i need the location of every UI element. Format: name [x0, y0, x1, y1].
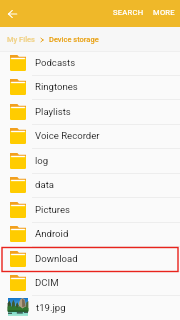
- button[interactable]: Playlists: [0, 100, 180, 125]
- button[interactable]: Pictures: [0, 198, 180, 223]
- button[interactable]: MORE: [149, 4, 180, 23]
- staticText: data: [35, 179, 54, 190]
- button[interactable]: Ringtones: [0, 75, 180, 100]
- button[interactable]: Device storage: [48, 32, 100, 47]
- staticText: Download: [35, 253, 78, 264]
- button[interactable]: Navigate up: [0, 1, 26, 27]
- button[interactable]: DCIM: [0, 271, 180, 296]
- button[interactable]: My Files: [6, 32, 36, 47]
- button[interactable]: Podcasts: [0, 51, 180, 76]
- staticText: Voice Recorder: [35, 130, 100, 141]
- staticText: log: [35, 155, 49, 166]
- button[interactable]: Voice Recorder: [0, 124, 180, 149]
- button[interactable]: t19.jpg: [0, 296, 180, 320]
- button[interactable]: Download: [0, 247, 180, 272]
- button[interactable]: data: [0, 173, 180, 198]
- staticText: Android: [35, 228, 69, 239]
- staticText: My Files: [7, 35, 35, 44]
- button[interactable]: log: [0, 149, 180, 174]
- staticText: Playlists: [35, 106, 71, 117]
- staticText: Device storage: [49, 35, 99, 44]
- staticText: MORE: [153, 8, 175, 17]
- staticText: Podcasts: [35, 57, 76, 68]
- staticText: DCIM: [35, 277, 59, 288]
- staticText: Ringtones: [35, 81, 78, 92]
- staticText: t19.jpg: [36, 302, 66, 313]
- staticText: SEARCH: [113, 8, 144, 17]
- button[interactable]: SEARCH: [108, 4, 149, 23]
- button[interactable]: Android: [0, 222, 180, 247]
- staticText: Pictures: [35, 204, 71, 215]
